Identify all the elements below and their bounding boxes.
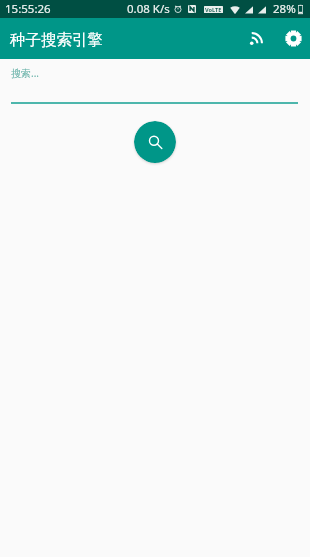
- button[interactable]: RSS feed: [239, 18, 273, 59]
- staticText: 搜索...: [11, 66, 40, 80]
- staticText: 28%: [273, 1, 296, 17]
- staticText: 种子搜索引擎: [10, 30, 103, 50]
- button[interactable]: Search input: [0, 59, 310, 103]
- button[interactable]: Settings: [276, 18, 310, 59]
- staticText: 15:55:26: [5, 1, 51, 17]
- staticText: VoLTE: [205, 6, 222, 13]
- button[interactable]: Search: [134, 121, 176, 163]
- staticText: 0.08 K/s: [127, 1, 170, 17]
